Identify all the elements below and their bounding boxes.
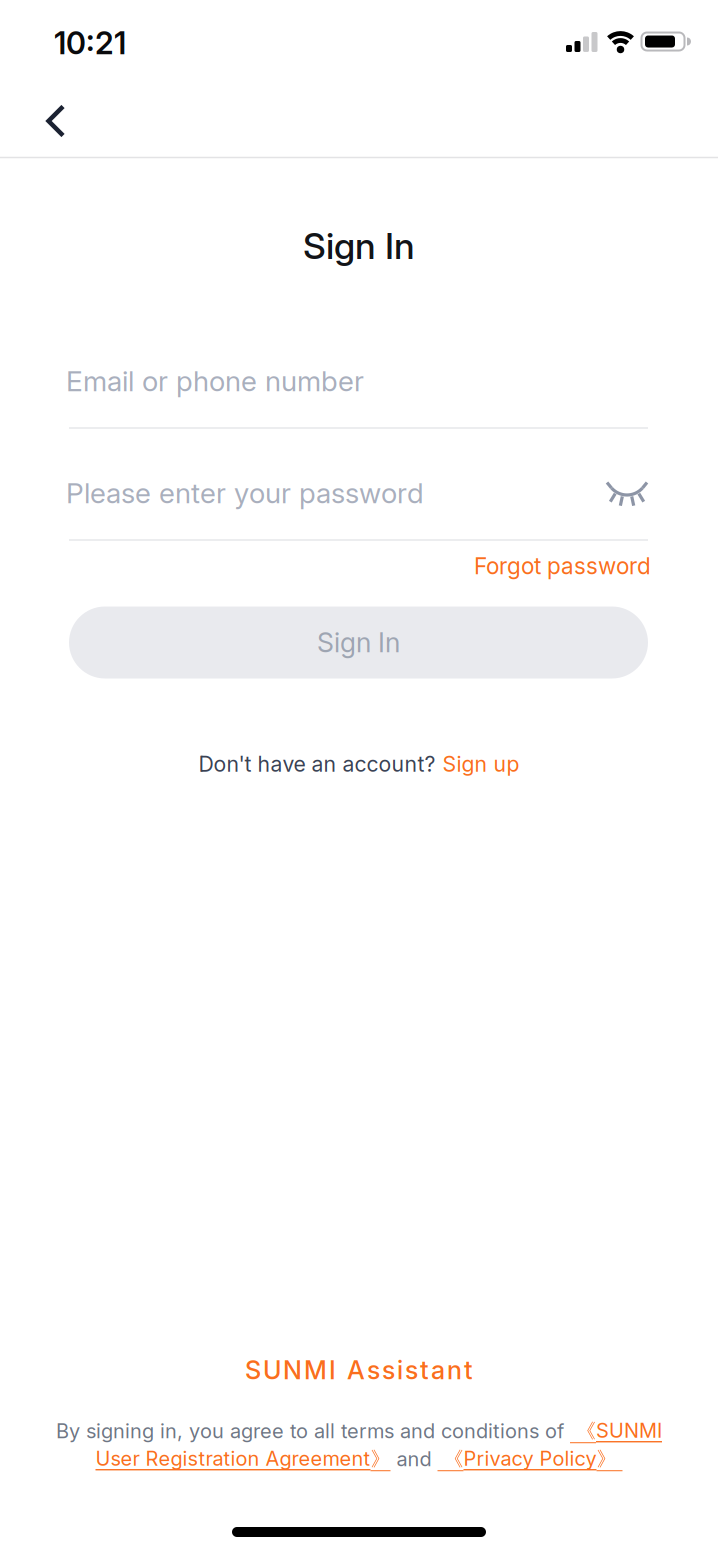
button[interactable]: Sign up	[442, 751, 519, 777]
button[interactable]: Sign In	[69, 606, 648, 678]
staticText: 《Privacy Policy》	[437, 1447, 622, 1471]
staticText: User Registration Agreement》	[95, 1447, 390, 1471]
button[interactable]: Email or phone number	[0, 348, 718, 414]
staticText: Email or phone number	[66, 364, 364, 397]
button[interactable]: 《SUNMI	[570, 1419, 662, 1443]
button[interactable]: User Registration Agreement》	[95, 1447, 390, 1471]
staticText: Don't have an account?	[198, 751, 435, 777]
button[interactable]: Forgot password	[474, 553, 651, 579]
staticText: By signing in, you agree to all terms an…	[56, 1419, 570, 1443]
staticText: Sign In	[317, 627, 400, 658]
staticText: Please enter your password	[66, 476, 424, 509]
button[interactable]: Password	[0, 460, 718, 526]
button[interactable]: 《Privacy Policy》	[437, 1447, 622, 1471]
button[interactable]: Show password	[597, 462, 657, 522]
staticText: Forgot password	[474, 553, 651, 579]
staticText: and	[390, 1447, 437, 1471]
button[interactable]: Back	[26, 92, 114, 150]
staticText: 《SUNMI	[570, 1419, 662, 1443]
staticText: 10:21	[54, 25, 126, 61]
staticText: Sign In	[303, 225, 415, 267]
staticText: Sign up	[442, 751, 519, 777]
staticText: SUNMI Assistant	[245, 1355, 473, 1385]
